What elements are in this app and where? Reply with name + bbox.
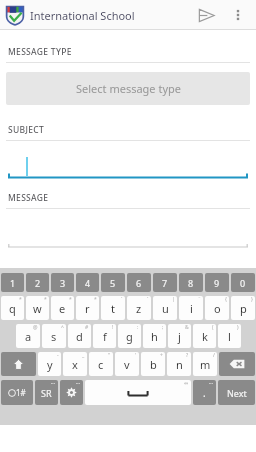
- button[interactable]: 3: [51, 273, 74, 292]
- staticText: 2: [35, 277, 41, 289]
- button[interactable]: Send: [189, 0, 223, 30]
- button[interactable]: 8: [179, 273, 203, 292]
- staticText: d: [76, 329, 83, 344]
- staticText: v: [124, 357, 130, 372]
- button[interactable]: Space: [85, 380, 191, 405]
- button[interactable]: e: [51, 296, 74, 320]
- button[interactable]: l: [218, 324, 241, 348]
- button[interactable]: z: [127, 296, 151, 320]
- staticText: *: [44, 296, 47, 303]
- staticText: u: [162, 301, 169, 316]
- button[interactable]: s: [42, 324, 66, 348]
- button[interactable]: w: [26, 296, 49, 320]
- staticText: ¨: [198, 296, 201, 303]
- staticText: y: [47, 357, 53, 372]
- button[interactable]: More options: [223, 0, 253, 30]
- button[interactable]: b: [141, 352, 165, 376]
- staticText: r: [85, 301, 90, 316]
- button[interactable]: j: [168, 324, 191, 348]
- staticText: c: [98, 357, 104, 372]
- staticText: z: [136, 301, 142, 316]
- staticText: 3: [60, 277, 66, 289]
- staticText: SR: [41, 387, 52, 399]
- button[interactable]: .: [193, 380, 216, 405]
- staticText: i: [190, 301, 193, 316]
- staticText: _: [82, 352, 85, 359]
- staticText: #: [85, 324, 89, 331]
- button[interactable]: 4: [76, 273, 99, 292]
- button[interactable]: 6: [127, 273, 151, 292]
- button[interactable]: k: [193, 324, 216, 348]
- button[interactable]: c: [89, 352, 113, 376]
- staticText: x: [72, 357, 78, 372]
- staticText: :: [137, 324, 139, 331]
- staticText: SUBJECT: [8, 124, 44, 136]
- button[interactable]: 5: [101, 273, 125, 292]
- staticText: j: [178, 329, 181, 344]
- staticText: ···: [76, 380, 81, 387]
- staticText: 5: [110, 277, 116, 289]
- staticText: *: [19, 296, 22, 303]
- button[interactable]: g: [118, 324, 141, 348]
- button[interactable]: 1: [1, 273, 24, 292]
- button[interactable]: 9: [205, 273, 229, 292]
- button[interactable]: f: [93, 324, 116, 348]
- staticText: }: [251, 296, 253, 303]
- staticText: p: [240, 301, 247, 316]
- staticText: !: [112, 324, 114, 331]
- button[interactable]: 2: [26, 273, 49, 292]
- staticText: w: [33, 301, 42, 316]
- button[interactable]: q: [1, 296, 24, 320]
- button[interactable]: h: [143, 324, 166, 348]
- button[interactable]: 7: [153, 273, 177, 292]
- button[interactable]: Shift: [1, 352, 36, 376]
- button[interactable]: [8, 141, 248, 180]
- staticText: k: [202, 329, 208, 344]
- button[interactable]: Backspace: [219, 352, 255, 376]
- staticText: ": [108, 352, 111, 359]
- staticText: -: [57, 352, 59, 359]
- button[interactable]: Settings: [60, 380, 83, 405]
- button[interactable]: 0: [231, 273, 255, 292]
- button[interactable]: a: [16, 324, 40, 348]
- button[interactable]: x: [63, 352, 87, 376]
- staticText: ´: [147, 296, 149, 303]
- staticText: /: [213, 352, 215, 359]
- staticText: e: [59, 301, 66, 316]
- button[interactable]: n: [167, 352, 191, 376]
- button[interactable]: m: [193, 352, 217, 376]
- staticText: 1: [10, 277, 16, 289]
- staticText: 8: [188, 277, 194, 289]
- staticText: 6: [136, 277, 142, 289]
- button[interactable]: [8, 209, 248, 249]
- staticText: MESSAGE: [8, 192, 49, 204]
- button[interactable]: u: [153, 296, 177, 320]
- staticText: t: [111, 301, 115, 316]
- staticText: 4: [85, 277, 91, 289]
- button[interactable]: SR: [35, 380, 58, 405]
- button[interactable]: v: [115, 352, 139, 376]
- staticText: q: [9, 301, 16, 316]
- staticText: l: [228, 329, 231, 344]
- button[interactable]: y: [38, 352, 61, 376]
- staticText: MESSAGE TYPE: [8, 46, 72, 58]
- button[interactable]: Symbols: [1, 380, 33, 405]
- button[interactable]: Next: [218, 380, 255, 405]
- staticText: ;: [162, 324, 164, 331]
- button[interactable]: p: [231, 296, 255, 320]
- button[interactable]: r: [76, 296, 99, 320]
- button[interactable]: o: [205, 296, 229, 320]
- staticText: Next: [227, 387, 247, 399]
- staticText: 7: [162, 277, 168, 289]
- button[interactable]: i: [179, 296, 203, 320]
- staticText: @: [33, 324, 38, 331]
- staticText: ···: [209, 380, 214, 387]
- staticText: h: [151, 329, 158, 344]
- button[interactable]: t: [101, 296, 125, 320]
- staticText: *: [94, 296, 97, 303]
- staticText: `: [121, 296, 123, 303]
- staticText: +: [160, 352, 163, 359]
- staticText: a: [25, 329, 32, 344]
- button[interactable]: d: [68, 324, 91, 348]
- button[interactable]: Select message type: [6, 72, 250, 105]
